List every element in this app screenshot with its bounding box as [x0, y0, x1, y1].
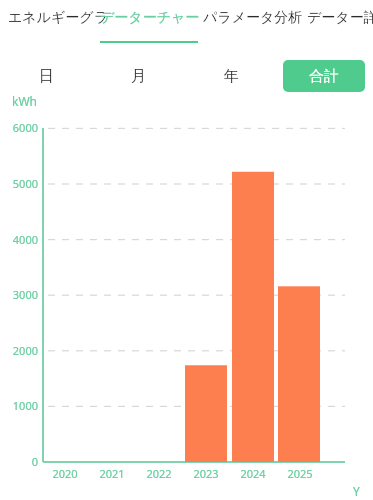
staticText: 0 — [0, 454, 38, 469]
staticText: パラメータ分析 — [203, 9, 303, 27]
staticText: 3000 — [0, 287, 38, 302]
staticText: 月 — [131, 67, 146, 86]
button[interactable]: 日 — [22, 62, 70, 90]
button[interactable]: 年 — [207, 62, 255, 90]
staticText: 日 — [39, 67, 54, 86]
staticText: 4000 — [0, 232, 38, 247]
staticText: 2022 — [137, 466, 181, 481]
staticText: 2025 — [278, 466, 322, 481]
staticText: 2024 — [231, 466, 275, 481]
button[interactable]: データー詳細 — [307, 9, 373, 27]
staticText: 2000 — [0, 343, 38, 358]
staticText: 2023 — [184, 466, 228, 481]
staticText: 合計 — [309, 67, 339, 86]
staticText: Y — [353, 483, 360, 499]
button[interactable]: 合計 — [283, 60, 365, 92]
staticText: 5000 — [0, 176, 38, 191]
staticText: データーチャー — [100, 9, 200, 27]
button[interactable]: パラメータ分析 — [203, 9, 303, 27]
button[interactable]: 月 — [114, 62, 162, 90]
staticText: 6000 — [0, 120, 38, 135]
button[interactable]: エネルギーグラ — [8, 9, 108, 27]
staticText: 年 — [224, 67, 239, 86]
staticText: データー詳細 — [307, 9, 373, 27]
staticText: 2020 — [43, 466, 87, 481]
staticText: 1000 — [0, 398, 38, 413]
staticText: 2021 — [90, 466, 134, 481]
button[interactable]: データーチャー — [100, 9, 200, 27]
staticText: エネルギーグラ — [8, 9, 108, 27]
staticText: kWh — [12, 93, 37, 109]
